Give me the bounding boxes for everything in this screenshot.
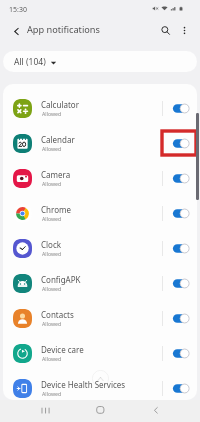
button[interactable]: Recent apps [32,399,58,422]
button[interactable]: Calendar [3,126,197,161]
button[interactable]: Toggle notifications for Contacts [167,308,191,329]
button[interactable]: Camera [3,161,197,196]
button[interactable]: Clock [3,231,197,266]
staticText: Device care [41,344,84,355]
staticText: Clock [41,239,62,250]
button[interactable]: Toggle notifications for Device care [167,343,191,364]
button[interactable]: Toggle notifications for Clock [167,238,191,259]
button[interactable]: Toggle notifications for ConfigAPK [167,273,191,294]
staticText: Allowed [42,180,62,187]
staticText: Device Health Services [41,379,126,390]
staticText: Allowed [42,250,62,257]
staticText: Allowed [42,110,62,117]
staticText: Calendar [41,134,75,145]
button[interactable]: ConfigAPK [3,266,197,301]
button[interactable]: Toggle notifications for Chrome [167,203,191,224]
button[interactable]: Device Health Services [3,371,197,406]
button[interactable]: More options [172,18,196,42]
button[interactable]: Search [153,18,177,42]
staticText: Allowed [42,145,62,152]
button[interactable]: Home [87,399,113,422]
staticText: Chrome [41,204,71,215]
staticText: All (104) [14,56,46,68]
staticText: Allowed [42,390,62,397]
staticText: Camera [41,169,71,180]
button[interactable]: Chrome [3,196,197,231]
button[interactable]: Back [143,399,169,422]
staticText: ConfigAPK [41,274,81,285]
staticText: Allowed [42,320,62,327]
staticText: Allowed [42,215,62,222]
button[interactable]: Contacts [3,301,197,336]
button[interactable]: All (104) [3,51,197,72]
staticText: Calculator [41,99,79,110]
button[interactable]: Navigate up [4,19,28,43]
button[interactable]: Toggle notifications for Calendar [167,133,191,154]
button[interactable]: Calculator [3,91,197,126]
staticText: 15:30 [9,5,27,15]
button[interactable]: Toggle notifications for Device Health S… [167,378,191,399]
staticText: Allowed [42,355,62,362]
button[interactable]: Device care [3,336,197,371]
button[interactable]: Toggle notifications for Calculator [167,98,191,119]
button[interactable]: Toggle notifications for Camera [167,168,191,189]
staticText: App notifications [27,23,100,36]
staticText: Contacts [41,309,74,320]
staticText: Allowed [42,285,62,292]
